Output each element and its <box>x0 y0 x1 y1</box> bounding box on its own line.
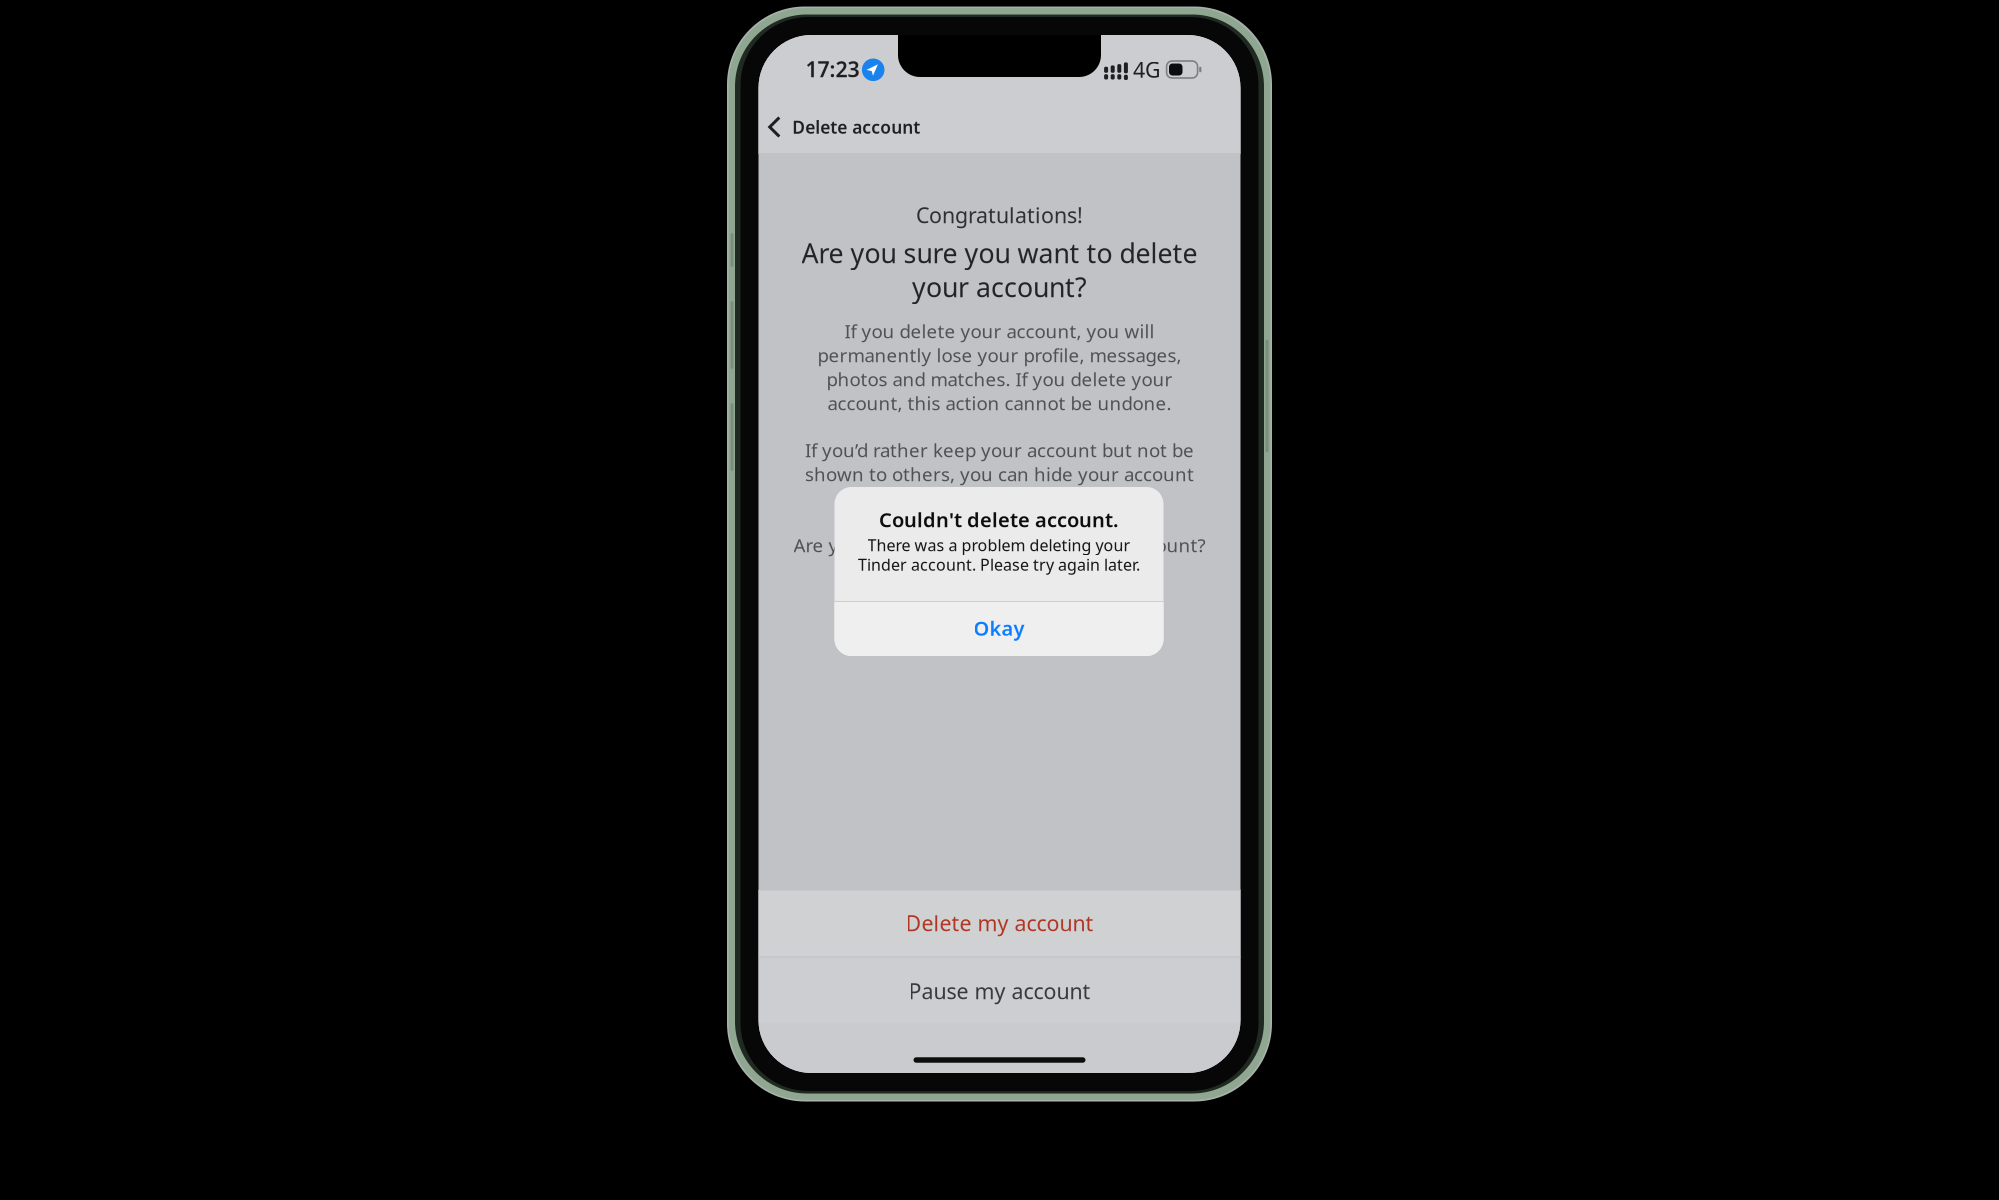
staticText: 17:23 <box>805 55 859 83</box>
staticText: Are you sure you want to delete <box>801 235 1197 271</box>
staticText: Are you sure you want to delete your acc… <box>793 533 1205 557</box>
staticText: There was a problem deleting your <box>867 534 1130 556</box>
button[interactable]: Okay <box>834 601 1163 655</box>
staticText: Couldn't delete account. <box>879 506 1119 533</box>
staticText: If you’d rather keep your account but no… <box>805 438 1194 462</box>
staticText: Tinder account. Please try again later. <box>858 554 1140 575</box>
staticText: permanently lose your profile, messages, <box>817 343 1181 367</box>
staticText: Delete my account <box>905 909 1093 937</box>
staticText: Congratulations! <box>916 201 1083 229</box>
staticText: account, this action cannot be undone. <box>827 391 1171 415</box>
staticText: your account? <box>912 269 1087 305</box>
staticText: Okay <box>973 615 1024 641</box>
staticText: Delete account <box>792 115 920 138</box>
staticText: Pause my account <box>908 977 1090 1005</box>
staticText: shown to others, you can hide your accou… <box>805 462 1194 486</box>
button[interactable]: Delete account <box>759 104 938 150</box>
staticText: If you delete your account, you will <box>844 319 1154 343</box>
button[interactable]: Delete my account <box>758 889 1240 956</box>
staticText: in Settings. <box>950 486 1049 510</box>
staticText: photos and matches. If you delete your <box>826 367 1172 391</box>
staticText: 4G <box>1133 55 1161 84</box>
button[interactable]: Pause my account <box>758 958 1240 1024</box>
